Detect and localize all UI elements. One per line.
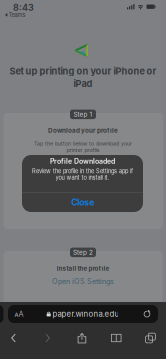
- staticText: Set up printing on your iPhone or: [9, 65, 156, 77]
- staticText: Review the profile in the Settings app i…: [32, 168, 133, 175]
- staticText: Install the profile: [56, 265, 109, 272]
- button[interactable]: Back: [0, 328, 26, 348]
- staticText: Teams: [9, 11, 26, 18]
- button[interactable]: Tabs: [137, 328, 163, 348]
- staticText: printer profile: [66, 147, 99, 153]
- staticText: Profile Downloaded: [50, 157, 115, 165]
- staticText: paper.winona.edu: [52, 309, 119, 319]
- staticText: Close: [71, 197, 94, 207]
- staticText: Download your profile: [48, 127, 118, 134]
- button[interactable]: Forward: [35, 328, 61, 348]
- button[interactable]: Bookmarks: [103, 328, 129, 348]
- staticText: iPad: [73, 78, 92, 89]
- button[interactable]: Close: [22, 192, 143, 212]
- button[interactable]: Open iOS Settings: [0, 276, 166, 286]
- staticText: 8:43: [13, 2, 34, 13]
- staticText: Tap the button below to download your: [34, 140, 132, 147]
- button[interactable]: Share: [69, 328, 95, 348]
- staticText: Step 1: [73, 110, 92, 118]
- button[interactable]: Reload: [136, 305, 158, 323]
- button[interactable]: Page settings: [8, 305, 30, 323]
- staticText: you want to install it.: [55, 174, 109, 181]
- staticText: Open iOS Settings: [52, 277, 114, 286]
- staticText: Step 2: [73, 248, 93, 256]
- staticText: ᴀA: [14, 309, 23, 318]
